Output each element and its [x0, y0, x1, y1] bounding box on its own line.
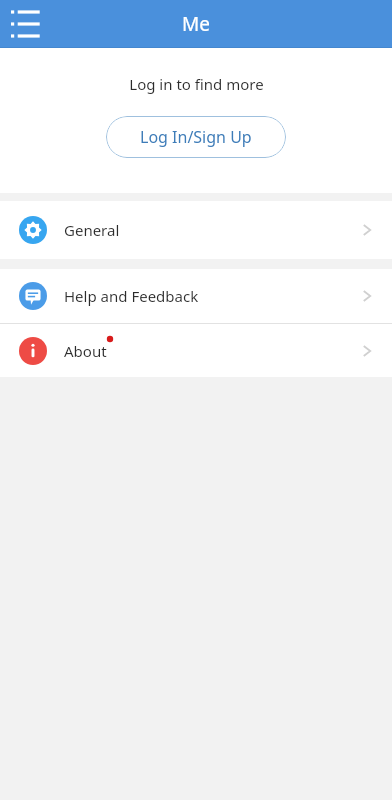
button[interactable]: Menu — [6, 4, 46, 44]
staticText: About — [64, 341, 107, 361]
staticText: Help and Feedback — [64, 286, 199, 306]
staticText: Log In/Sign Up — [140, 126, 252, 148]
button[interactable]: General — [0, 201, 392, 259]
staticText: Log in to find more — [129, 74, 264, 94]
button[interactable]: Help and Feedback — [0, 269, 392, 323]
staticText: Me — [182, 11, 210, 37]
button[interactable]: Log In/Sign Up — [106, 116, 286, 158]
staticText: General — [64, 220, 120, 240]
button[interactable]: About — [0, 324, 392, 377]
